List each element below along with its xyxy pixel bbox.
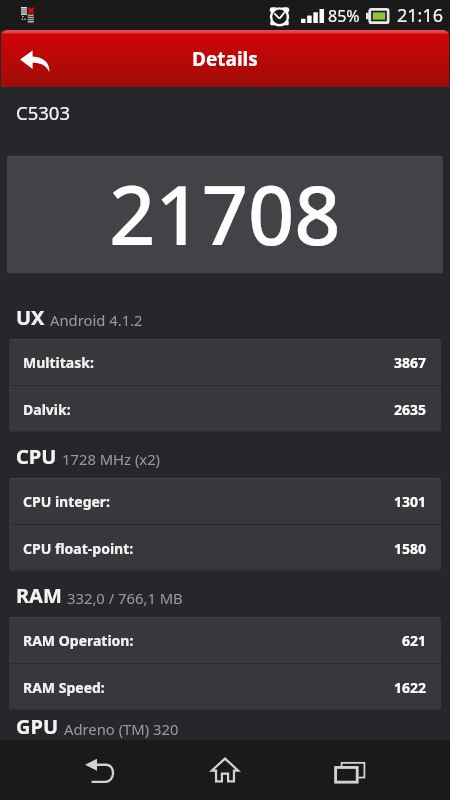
staticText: 21:16 bbox=[397, 3, 444, 28]
staticText: 1301 bbox=[394, 492, 427, 511]
staticText: Adreno (TM) 320 bbox=[64, 719, 179, 739]
staticText: 21708 bbox=[109, 158, 341, 268]
staticText: RAM Operation: bbox=[23, 631, 134, 650]
staticText: 1622 bbox=[394, 678, 427, 697]
staticText: CPU float-point: bbox=[23, 539, 134, 558]
button[interactable]: Recent apps bbox=[305, 740, 395, 800]
button[interactable]: Dalvik: bbox=[9, 386, 441, 432]
staticText: Details bbox=[192, 46, 258, 72]
staticText: Dalvik: bbox=[23, 400, 71, 419]
staticText: GPU bbox=[16, 713, 59, 740]
button[interactable]: CPU integer: bbox=[9, 478, 441, 524]
button[interactable]: RAM Speed: bbox=[9, 664, 441, 710]
staticText: Multitask: bbox=[23, 353, 94, 372]
staticText: RAM Speed: bbox=[23, 678, 105, 697]
staticText: Android 4.1.2 bbox=[50, 310, 143, 330]
staticText: 3867 bbox=[394, 353, 427, 372]
staticText: 621 bbox=[402, 631, 427, 650]
button[interactable]: Back bbox=[2, 32, 68, 87]
staticText: 332,0 / 766,1 MB bbox=[67, 588, 183, 608]
staticText: 1580 bbox=[394, 539, 427, 558]
staticText: 2635 bbox=[394, 400, 427, 419]
staticText: RAM bbox=[16, 582, 62, 609]
button[interactable]: RAM Operation: bbox=[9, 617, 441, 663]
staticText: C5303 bbox=[16, 100, 71, 125]
staticText: 1728 MHz (x2) bbox=[62, 449, 161, 469]
button[interactable]: Multitask: bbox=[9, 339, 441, 385]
button[interactable]: Home bbox=[180, 740, 270, 800]
staticText: UX bbox=[16, 304, 45, 331]
staticText: CPU bbox=[16, 443, 57, 470]
staticText: CPU integer: bbox=[23, 492, 111, 511]
button[interactable]: Back bbox=[55, 740, 145, 800]
button[interactable]: CPU float-point: bbox=[9, 525, 441, 571]
staticText: 85% bbox=[328, 5, 360, 27]
